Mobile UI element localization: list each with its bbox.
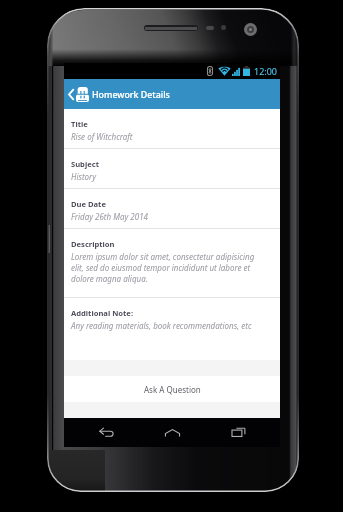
staticText: Description [71,239,115,249]
staticText: Title [71,119,88,129]
button[interactable]: Home [148,418,196,447]
button[interactable]: Navigate up, Homework Details [64,87,280,102]
staticText: Due Date [71,199,106,209]
staticText: Subject [71,159,99,169]
button[interactable]: Ask A Question [64,376,280,402]
staticText: Ask A Question [144,384,201,395]
staticText: History [71,171,97,182]
staticText: Lorem ipsum dolor sit amet, consectetur … [71,251,255,284]
staticText: Friday 26th May 2014 [71,211,148,222]
staticText: 12:00 [254,65,278,77]
staticText: Any reading materials, book recommendati… [71,320,252,331]
staticText: Rise of Witchcraft [71,131,133,142]
button[interactable]: Back [82,418,130,447]
staticText: Homework Details [92,89,170,101]
button[interactable]: Recent apps [214,418,262,447]
staticText: Additional Note: [71,308,134,318]
